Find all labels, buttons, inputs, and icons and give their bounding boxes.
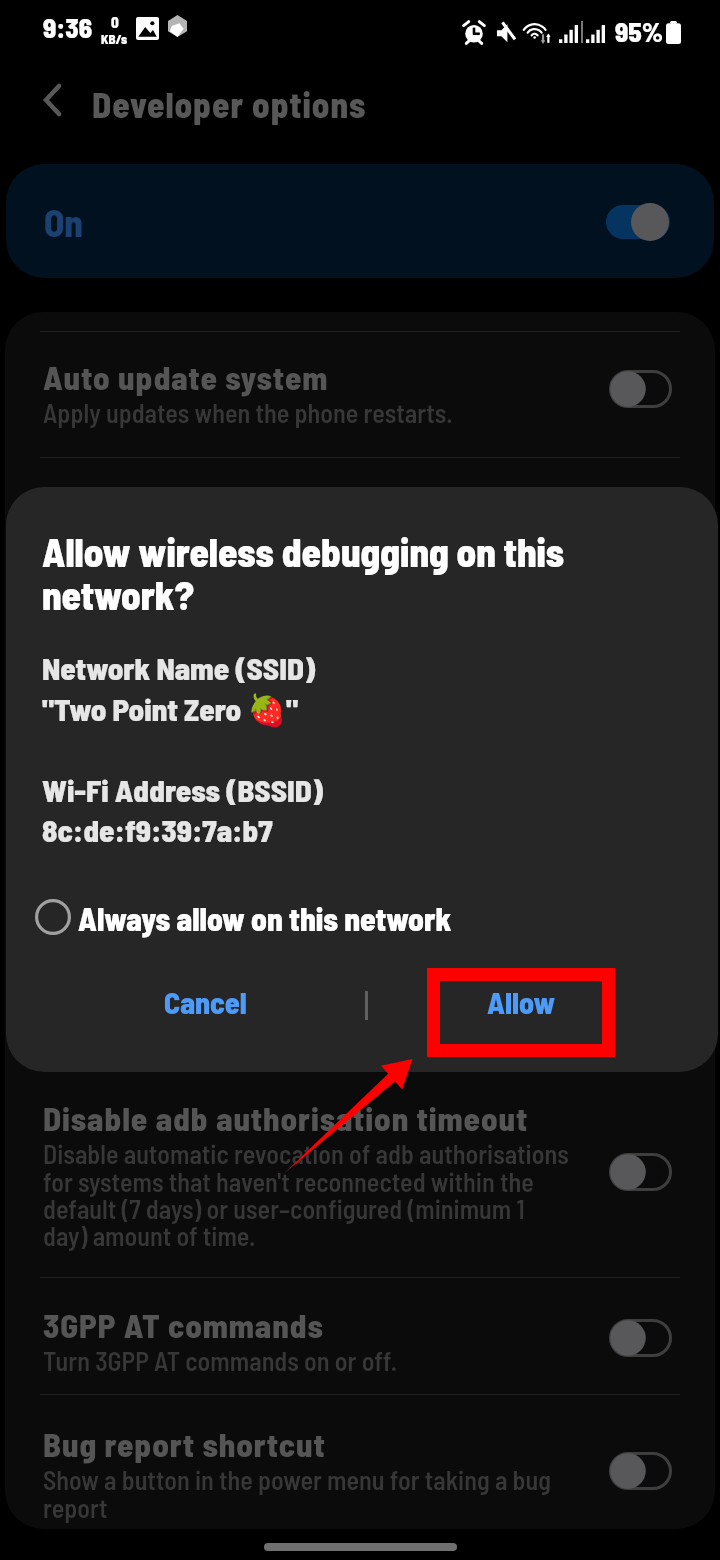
staticText: Allow wireless debugging on this network… xyxy=(42,528,565,618)
button[interactable]: On xyxy=(6,164,714,278)
button[interactable]: 3GPP AT commands xyxy=(5,1282,715,1399)
staticText: Developer options xyxy=(92,83,367,125)
staticText: Turn 3GPP AT commands on or off. xyxy=(43,1345,398,1376)
staticText: 3GPP AT commands xyxy=(43,1305,324,1345)
button[interactable]: Always allow on this network xyxy=(29,890,464,944)
button[interactable]: Disable adb authorisation timeout xyxy=(5,1072,715,1277)
staticText: Auto update system xyxy=(43,357,329,397)
staticText: Disable automatic revocation of adb auth… xyxy=(43,1138,569,1251)
staticText: 0 xyxy=(111,13,119,31)
staticText: Apply updates when the phone restarts. xyxy=(43,397,453,428)
staticText: On xyxy=(44,200,83,244)
staticText: Allow xyxy=(487,984,556,1020)
button[interactable]: Allow xyxy=(381,947,662,1058)
button[interactable]: Back xyxy=(22,70,82,130)
staticText: 9:36 xyxy=(43,11,93,43)
staticText: Show a button in the power menu for taki… xyxy=(43,1464,551,1523)
button[interactable]: Auto update system xyxy=(5,329,715,455)
staticText: Disable adb authorisation timeout xyxy=(43,1098,529,1138)
staticText: Cancel xyxy=(164,984,247,1020)
staticText: Bug report shortcut xyxy=(43,1424,326,1464)
staticText: Wi-Fi Address (BSSID) 8c:de:f9:39:7a:b7 xyxy=(42,771,323,848)
staticText: Network Name (SSID) "Two Point Zero 🍓" xyxy=(42,649,316,728)
staticText: Always allow on this network xyxy=(78,899,452,937)
button[interactable]: Cancel xyxy=(38,947,373,1058)
button[interactable]: Bug report shortcut xyxy=(5,1403,715,1529)
staticText: 95% xyxy=(615,15,663,47)
staticText: KB/s xyxy=(101,31,128,47)
